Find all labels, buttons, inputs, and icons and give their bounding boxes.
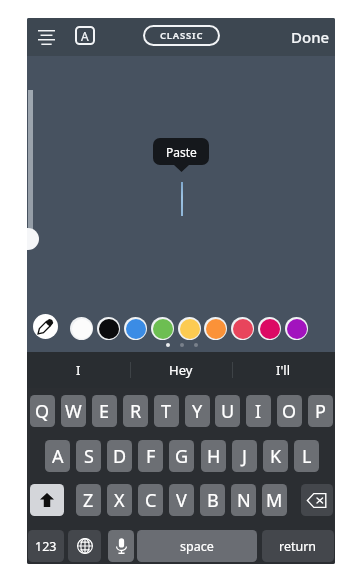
button[interactable]: return: [262, 530, 334, 562]
button[interactable]: I: [246, 395, 271, 427]
button[interactable]: Hey: [129, 352, 232, 388]
button[interactable]: Colour 7: [231, 317, 254, 340]
button[interactable]: Shift: [30, 484, 64, 516]
button[interactable]: Done: [288, 23, 333, 51]
button[interactable]: F: [138, 440, 163, 472]
button[interactable]: Backspace: [301, 484, 333, 516]
staticText: W: [65, 399, 82, 424]
staticText: B: [207, 488, 219, 513]
staticText: Q: [35, 399, 50, 424]
staticText: J: [242, 444, 247, 469]
button[interactable]: Text alignment: [36, 23, 57, 51]
staticText: I: [255, 399, 262, 424]
button[interactable]: L: [294, 440, 319, 472]
button[interactable]: I'll: [232, 352, 335, 388]
button[interactable]: Colour 4: [151, 317, 174, 340]
button[interactable]: K: [263, 440, 288, 472]
staticText: V: [176, 488, 187, 513]
button[interactable]: A: [45, 440, 70, 472]
staticText: K: [270, 444, 282, 469]
button[interactable]: H: [201, 440, 226, 472]
button[interactable]: Y: [185, 395, 210, 427]
button[interactable]: space: [137, 530, 257, 562]
button[interactable]: Colour 2: [97, 317, 120, 340]
staticText: C: [145, 488, 157, 513]
button[interactable]: B: [200, 484, 225, 516]
button[interactable]: Z: [76, 484, 101, 516]
button[interactable]: D: [107, 440, 132, 472]
staticText: F: [146, 444, 156, 469]
staticText: A: [52, 444, 64, 469]
button[interactable]: O: [277, 395, 302, 427]
staticText: G: [175, 444, 189, 469]
staticText: O: [282, 399, 297, 424]
staticText: L: [302, 444, 312, 469]
button[interactable]: Colour 1: [70, 317, 93, 340]
staticText: return: [279, 538, 317, 555]
button[interactable]: Size slider: [27, 228, 39, 250]
button[interactable]: P: [308, 395, 333, 427]
staticText: 123: [35, 538, 57, 555]
button[interactable]: Q: [30, 395, 55, 427]
button[interactable]: Colour 8: [258, 317, 281, 340]
staticText: R: [130, 399, 142, 424]
staticText: E: [99, 399, 110, 424]
button[interactable]: G: [169, 440, 194, 472]
staticText: P: [315, 399, 326, 424]
button[interactable]: Eyedropper: [33, 314, 58, 339]
button[interactable]: J: [232, 440, 257, 472]
staticText: Y: [192, 399, 203, 424]
staticText: Paste: [166, 144, 197, 160]
staticText: X: [114, 488, 125, 513]
staticText: U: [221, 399, 235, 424]
staticText: H: [207, 444, 221, 469]
button[interactable]: Colour 5: [178, 317, 201, 340]
button[interactable]: R: [123, 395, 148, 427]
button[interactable]: N: [231, 484, 256, 516]
button[interactable]: V: [169, 484, 194, 516]
button[interactable]: 123: [28, 530, 64, 562]
staticText: M: [266, 488, 283, 513]
button[interactable]: I: [27, 352, 129, 388]
button[interactable]: Change keyboard: [68, 530, 101, 562]
button[interactable]: Colour 6: [204, 317, 227, 340]
button[interactable]: Paste: [153, 138, 209, 165]
button[interactable]: X: [107, 484, 132, 516]
button[interactable]: W: [61, 395, 86, 427]
staticText: S: [84, 444, 94, 469]
staticText: T: [161, 399, 172, 424]
staticText: Done: [291, 27, 330, 47]
button[interactable]: E: [92, 395, 117, 427]
button[interactable]: Dictation: [108, 530, 134, 562]
button[interactable]: C: [138, 484, 163, 516]
button[interactable]: Colour 3: [124, 317, 147, 340]
staticText: D: [113, 444, 127, 469]
button[interactable]: U: [215, 395, 240, 427]
button[interactable]: Colour 9: [285, 317, 308, 340]
staticText: Hey: [169, 361, 193, 379]
staticText: space: [180, 538, 214, 555]
staticText: I'll: [276, 361, 291, 379]
button[interactable]: S: [76, 440, 101, 472]
staticText: Z: [83, 488, 94, 513]
staticText: N: [237, 488, 251, 513]
staticText: CLASSIC: [160, 29, 204, 42]
button[interactable]: T: [154, 395, 179, 427]
button[interactable]: CLASSIC: [143, 25, 220, 46]
staticText: A: [81, 28, 89, 44]
button[interactable]: M: [262, 484, 287, 516]
staticText: I: [76, 361, 81, 379]
button[interactable]: Font style: [75, 26, 95, 45]
